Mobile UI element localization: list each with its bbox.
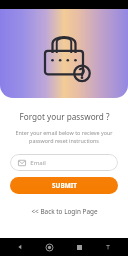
- staticText: << Back to Login Page: [31, 207, 98, 216]
- button[interactable]: Back: [10, 238, 30, 256]
- button[interactable]: Recent apps: [69, 238, 89, 256]
- staticText: Enter your email below to recieve your p…: [11, 129, 117, 145]
- button[interactable]: Email: [10, 154, 118, 171]
- button[interactable]: << Back to Login Page: [25, 205, 104, 218]
- button[interactable]: SUBMIT: [10, 177, 118, 194]
- staticText: SUBMIT: [52, 181, 77, 190]
- button[interactable]: Keyboard: [98, 238, 118, 256]
- button[interactable]: Home: [39, 238, 59, 256]
- staticText: Email: [30, 159, 46, 167]
- staticText: Forgot your password ?: [19, 111, 110, 122]
